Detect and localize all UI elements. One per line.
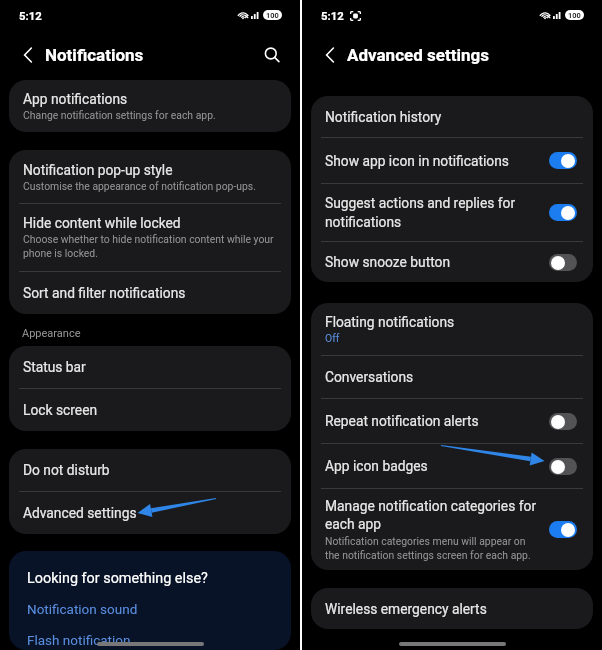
staticText: App notifications — [23, 91, 128, 107]
button[interactable]: Advanced settings — [9, 492, 291, 534]
button[interactable]: On — [549, 152, 577, 169]
staticText: Show snooze button — [325, 254, 549, 270]
button[interactable]: App icon badges — [311, 444, 593, 488]
button[interactable]: Manage notification categories for each … — [311, 489, 593, 570]
staticText: Notification pop-up style — [23, 162, 173, 178]
staticText: 5:12 — [19, 9, 42, 22]
staticText: Suggest actions and replies for notifica… — [325, 195, 549, 230]
staticText: Sort and filter notifications — [23, 285, 286, 301]
button[interactable]: Lock screen — [9, 389, 291, 431]
button[interactable]: Hide content while locked — [9, 204, 291, 271]
staticText: Notifications — [45, 45, 144, 65]
staticText: Choose whether to hide notification cont… — [23, 233, 286, 260]
button[interactable]: Back — [18, 43, 38, 67]
staticText: Notification sound — [27, 601, 138, 617]
button[interactable]: Show app icon in notifications — [311, 138, 593, 183]
staticText: Status bar — [23, 359, 286, 375]
staticText: Lock screen — [23, 402, 286, 418]
staticText: Repeat notification alerts — [325, 413, 549, 429]
staticText: Off — [325, 332, 340, 344]
staticText: Floating notifications — [325, 314, 455, 330]
staticText: Customise the appearance of notification… — [23, 180, 256, 192]
staticText: App icon badges — [325, 458, 549, 474]
staticText: Advanced settings — [347, 45, 489, 65]
staticText: 100 — [568, 11, 581, 20]
button[interactable]: Conversations — [311, 356, 593, 398]
staticText: 5:12 — [321, 9, 344, 22]
staticText: Change notification settings for each ap… — [23, 109, 216, 121]
button[interactable]: On — [549, 521, 577, 538]
button[interactable]: Back — [320, 43, 340, 67]
button[interactable]: Sort and filter notifications — [9, 272, 291, 314]
button[interactable]: Status bar — [9, 346, 291, 388]
staticText: Hide content while locked — [23, 215, 181, 231]
button[interactable]: Show snooze button — [311, 242, 593, 282]
button[interactable]: Do not disturb — [9, 449, 291, 491]
button[interactable]: Suggest actions and replies for notifica… — [311, 184, 593, 241]
button[interactable]: Notification pop-up style — [9, 150, 291, 203]
button[interactable]: Off — [549, 413, 577, 430]
staticText: Conversations — [325, 369, 588, 385]
staticText: Manage notification categories for each … — [325, 498, 537, 533]
staticText: 100 — [266, 11, 279, 20]
button[interactable]: On — [549, 204, 577, 221]
button[interactable]: Off — [549, 458, 577, 475]
staticText: Do not disturb — [23, 462, 286, 478]
button[interactable]: Repeat notification alerts — [311, 399, 593, 443]
button[interactable]: Search — [260, 43, 284, 67]
staticText: Appearance — [22, 327, 81, 340]
staticText: Notification categories menu will appear… — [325, 535, 531, 562]
button[interactable]: Notification history — [311, 96, 593, 137]
staticText: Notification history — [325, 109, 588, 125]
staticText: Show app icon in notifications — [325, 153, 549, 169]
staticText: Flash notification — [27, 632, 131, 648]
button[interactable]: App notifications — [9, 80, 291, 132]
button[interactable]: Wireless emergency alerts — [311, 588, 593, 629]
button[interactable]: Off — [549, 254, 577, 271]
staticText: Looking for something else? — [27, 570, 208, 587]
button[interactable]: Flash notification — [9, 632, 291, 648]
staticText: Wireless emergency alerts — [325, 601, 588, 617]
staticText: Advanced settings — [23, 505, 286, 521]
button[interactable]: Floating notifications — [311, 303, 593, 355]
button[interactable]: Notification sound — [9, 601, 291, 617]
